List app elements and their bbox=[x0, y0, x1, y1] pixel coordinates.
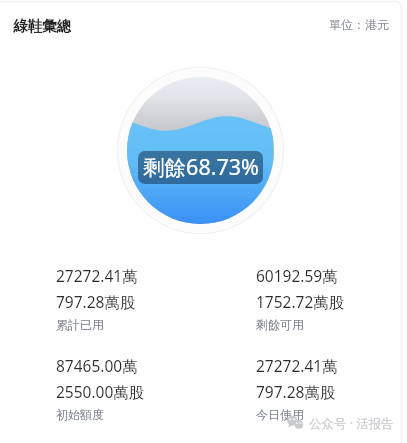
staticText: 27272.41萬 bbox=[56, 265, 138, 286]
staticText: 797.28萬股 bbox=[56, 291, 136, 312]
staticText: 797.28萬股 bbox=[256, 381, 336, 402]
staticText: 累計已用 bbox=[56, 317, 104, 332]
staticText: 27272.41萬 bbox=[256, 355, 338, 376]
staticText: 剩餘可用 bbox=[256, 317, 304, 332]
button[interactable]: 剩餘68.73% bbox=[138, 151, 263, 184]
staticText: 2550.00萬股 bbox=[56, 381, 145, 402]
staticText: 初始額度 bbox=[56, 407, 104, 422]
staticText: 今日使用 bbox=[256, 407, 304, 422]
other: WeChat official account watermark bbox=[283, 411, 307, 437]
button[interactable]: 27272.41萬 bbox=[56, 265, 138, 332]
button[interactable]: 27272.41萬 bbox=[256, 355, 338, 422]
staticText: 剩餘68.73% bbox=[143, 152, 259, 181]
staticText: 60192.59萬 bbox=[256, 265, 338, 286]
button[interactable]: 60192.59萬 bbox=[256, 265, 345, 332]
staticText: 綠鞋彙總 bbox=[13, 17, 71, 35]
staticText: 87465.00萬 bbox=[56, 355, 138, 376]
staticText: 1752.72萬股 bbox=[256, 291, 345, 312]
staticText: 單位：港元 bbox=[0, 17, 389, 32]
button[interactable]: 87465.00萬 bbox=[56, 355, 145, 422]
staticText: 公众号 · 活报告 bbox=[309, 415, 394, 432]
